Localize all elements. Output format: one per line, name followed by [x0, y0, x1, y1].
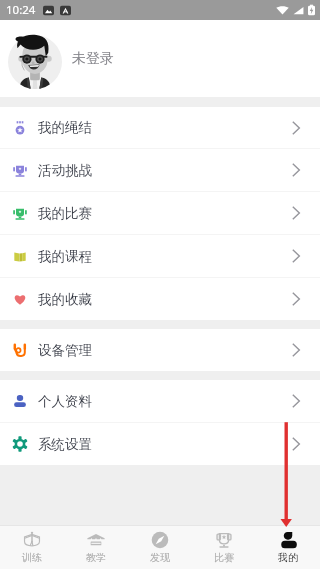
staticText: 我的绳结	[38, 119, 92, 136]
staticText: 我的比赛	[38, 205, 92, 222]
button[interactable]: 未登录	[0, 20, 320, 97]
button[interactable]: 发现	[128, 526, 192, 569]
staticText: 活动挑战	[38, 162, 92, 179]
button[interactable]: 我的比赛	[0, 192, 320, 234]
button[interactable]: 训练	[0, 526, 64, 569]
staticText: 我的	[278, 551, 298, 564]
button[interactable]: 我的绳结	[0, 107, 320, 148]
staticText: 10:24	[6, 2, 36, 18]
button[interactable]: 个人资料	[0, 380, 320, 422]
staticText: 教学	[86, 551, 106, 564]
staticText: 比赛	[214, 551, 234, 564]
button[interactable]: 比赛	[192, 526, 256, 569]
staticText: 训练	[22, 551, 42, 564]
button[interactable]: 系统设置	[0, 423, 320, 465]
staticText: 设备管理	[38, 342, 92, 359]
button[interactable]: 我的收藏	[0, 278, 320, 320]
staticText: 个人资料	[38, 393, 92, 410]
staticText: 我的收藏	[38, 291, 92, 308]
button[interactable]: 活动挑战	[0, 149, 320, 191]
staticText: 未登录	[72, 50, 114, 68]
staticText: 我的课程	[38, 248, 92, 265]
button[interactable]: 我的	[256, 526, 320, 569]
staticText: 系统设置	[38, 436, 92, 453]
button[interactable]: 设备管理	[0, 329, 320, 371]
staticText: 发现	[150, 551, 170, 564]
button[interactable]: 我的课程	[0, 235, 320, 277]
button[interactable]: 教学	[64, 526, 128, 569]
